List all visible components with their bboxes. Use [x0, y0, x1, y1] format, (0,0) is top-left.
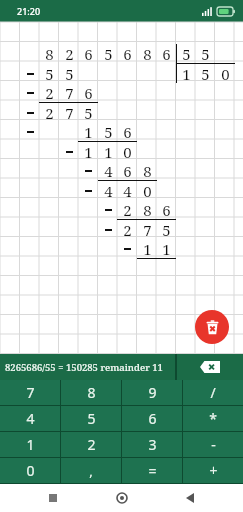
staticText: 6	[123, 44, 132, 64]
staticText: 5	[87, 409, 96, 428]
button[interactable]: *	[183, 406, 243, 431]
staticText: 6	[84, 83, 93, 103]
staticText: 6	[148, 409, 157, 428]
button[interactable]: Clear	[195, 310, 229, 344]
button[interactable]: 4	[0, 406, 60, 431]
staticText: *	[209, 409, 217, 428]
staticText: 8	[143, 200, 152, 220]
staticText: 5	[65, 64, 74, 84]
button[interactable]: Back	[175, 484, 205, 512]
staticText: 5	[182, 44, 191, 64]
staticText: 2	[123, 200, 132, 220]
staticText: 3	[148, 435, 157, 454]
staticText: 0	[221, 64, 230, 84]
staticText: 7	[143, 220, 152, 240]
button[interactable]: +	[183, 458, 243, 483]
staticText: +	[209, 461, 218, 480]
button[interactable]: 6	[122, 406, 182, 431]
button[interactable]: Recents	[38, 484, 68, 512]
staticText: 1	[143, 239, 152, 259]
staticText: 5	[201, 44, 210, 64]
button[interactable]: -	[183, 432, 243, 457]
button[interactable]: 9	[122, 380, 182, 405]
staticText: 1	[26, 435, 35, 454]
button[interactable]: 7	[0, 380, 60, 405]
staticText: 8265686/55 = 150285 remainder 11	[5, 361, 163, 374]
staticText: 2	[87, 435, 96, 454]
staticText: 8	[45, 44, 54, 64]
staticText: 0	[123, 142, 132, 162]
staticText: 7	[65, 103, 74, 123]
button[interactable]: 5	[61, 406, 121, 431]
button[interactable]: 2	[61, 432, 121, 457]
staticText: 4	[123, 181, 132, 201]
button[interactable]: Home	[107, 484, 137, 512]
staticText: 5	[45, 64, 54, 84]
staticText: 8	[87, 383, 96, 402]
staticText: 6	[162, 44, 171, 64]
staticText: 4	[26, 409, 35, 428]
staticText: 7	[26, 383, 35, 402]
staticText: 8	[143, 44, 152, 64]
staticText: =	[148, 461, 157, 480]
staticText: 5	[162, 220, 171, 240]
staticText: 1	[182, 64, 191, 84]
staticText: -	[211, 435, 216, 454]
button[interactable]: Backspace	[177, 354, 243, 380]
staticText: 21:20	[17, 5, 41, 17]
staticText: 6	[84, 44, 93, 64]
button[interactable]: ,	[61, 458, 121, 483]
staticText: 6	[162, 200, 171, 220]
staticText: 2	[45, 83, 54, 103]
staticText: 5	[84, 103, 93, 123]
staticText: ,	[89, 462, 93, 480]
button[interactable]: /	[183, 380, 243, 405]
staticText: 1	[104, 142, 113, 162]
staticText: 5	[104, 122, 113, 142]
staticText: 1	[162, 239, 171, 259]
staticText: 1	[84, 142, 93, 162]
button[interactable]: 0	[0, 458, 60, 483]
staticText: 2	[45, 103, 54, 123]
staticText: 0	[26, 461, 35, 480]
staticText: 6	[123, 161, 132, 181]
button[interactable]: 8	[61, 380, 121, 405]
staticText: 5	[104, 44, 113, 64]
staticText: /	[210, 383, 216, 402]
staticText: 9	[148, 383, 157, 402]
staticText: 4	[104, 181, 113, 201]
staticText: 6	[123, 122, 132, 142]
button[interactable]: 3	[122, 432, 182, 457]
staticText: 7	[65, 83, 74, 103]
staticText: 2	[123, 220, 132, 240]
button[interactable]: 8265686/55 = 150285 remainder 11	[0, 354, 175, 380]
button[interactable]: =	[122, 458, 182, 483]
button[interactable]: 1	[0, 432, 60, 457]
staticText: 1	[84, 122, 93, 142]
staticText: 4	[104, 161, 113, 181]
staticText: 2	[65, 44, 74, 64]
staticText: 5	[201, 64, 210, 84]
staticText: 8	[143, 161, 152, 181]
staticText: 0	[143, 181, 152, 201]
